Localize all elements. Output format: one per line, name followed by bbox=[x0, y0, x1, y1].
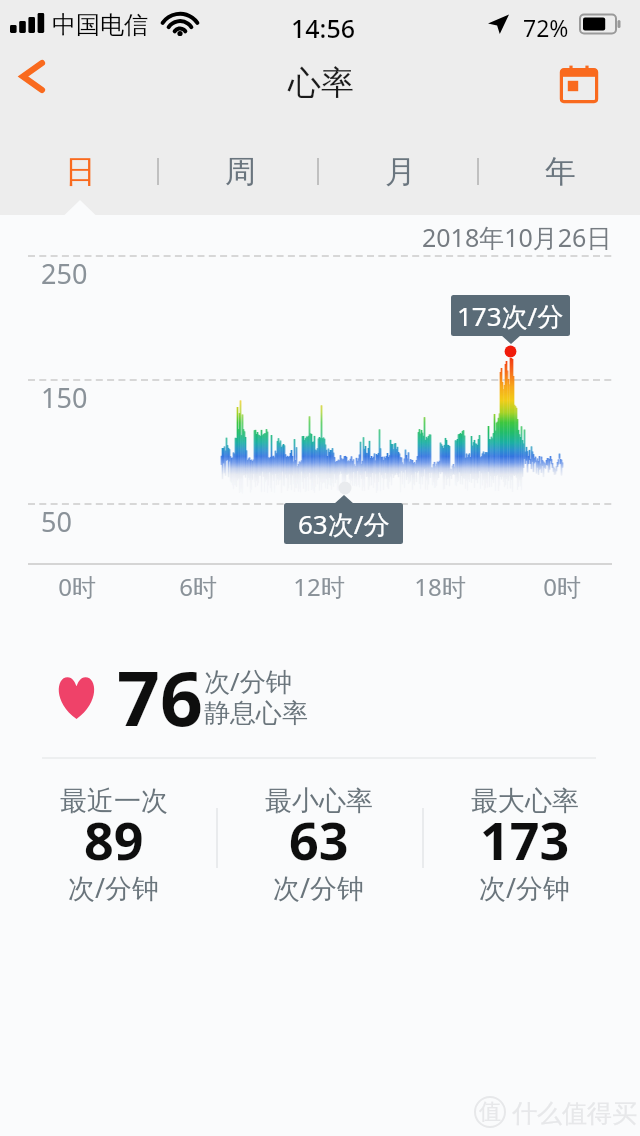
staticText: 89 bbox=[84, 804, 144, 875]
staticText: 0时 bbox=[37, 570, 117, 603]
staticText: 150 bbox=[41, 379, 88, 416]
staticText: 心率 bbox=[288, 62, 354, 104]
button[interactable]: Calendar bbox=[559, 64, 599, 104]
button[interactable]: 最近一次 bbox=[14, 770, 214, 930]
staticText: 中国电信 bbox=[52, 10, 148, 40]
staticText: 173 bbox=[480, 804, 570, 875]
button[interactable]: 年 bbox=[480, 126, 640, 215]
button[interactable]: 最大心率 bbox=[425, 770, 625, 930]
staticText: 次/分钟 bbox=[479, 869, 571, 906]
staticText: 50 bbox=[41, 503, 72, 540]
staticText: 次/分钟 bbox=[68, 869, 160, 906]
staticText: 2018年10月26日 bbox=[422, 220, 612, 254]
staticText: 最小心率 bbox=[265, 784, 373, 818]
button[interactable]: Back bbox=[4, 48, 60, 104]
staticText: 年 bbox=[545, 152, 576, 191]
staticText: 最大心率 bbox=[471, 784, 579, 818]
staticText: 18时 bbox=[400, 570, 480, 603]
button[interactable]: 日 bbox=[0, 126, 160, 215]
button[interactable]: 76 bbox=[0, 610, 640, 770]
staticText: 76 bbox=[117, 646, 203, 748]
staticText: 最近一次 bbox=[60, 784, 168, 818]
staticText: 14:56 bbox=[291, 11, 356, 45]
staticText: 周 bbox=[225, 152, 256, 191]
staticText: 63次/分 bbox=[298, 506, 390, 542]
button[interactable]: 最小心率 bbox=[219, 770, 419, 930]
staticText: 日 bbox=[65, 152, 96, 191]
staticText: 次/分钟 bbox=[204, 663, 292, 699]
staticText: 值 bbox=[479, 1098, 501, 1126]
staticText: 63 bbox=[289, 804, 349, 875]
staticText: 月 bbox=[385, 152, 416, 191]
button[interactable]: 月 bbox=[320, 126, 480, 215]
staticText: 173次/分 bbox=[457, 298, 564, 334]
staticText: 12时 bbox=[279, 570, 359, 603]
staticText: 静息心率 bbox=[204, 697, 308, 730]
button[interactable]: 周 bbox=[160, 126, 320, 215]
staticText: 6时 bbox=[158, 570, 238, 603]
staticText: 什么值得买 bbox=[512, 1098, 637, 1129]
staticText: 0时 bbox=[522, 570, 602, 603]
staticText: 次/分钟 bbox=[273, 869, 365, 906]
staticText: 72% bbox=[523, 12, 569, 43]
staticText: 250 bbox=[41, 255, 88, 292]
